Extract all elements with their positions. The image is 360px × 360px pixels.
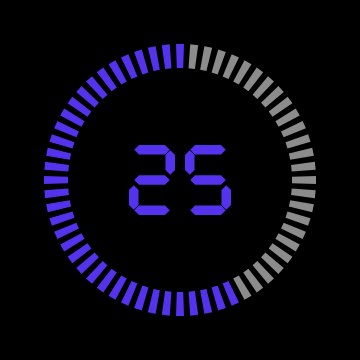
button[interactable]: Timer, 25 remaining [0, 0, 360, 360]
